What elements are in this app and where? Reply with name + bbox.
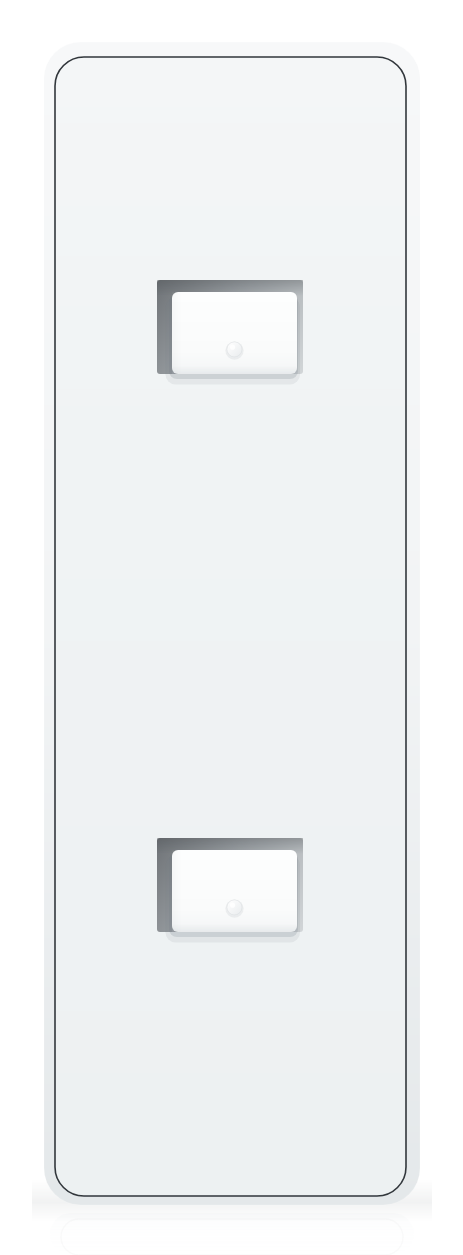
button[interactable]: Switch one	[172, 292, 297, 374]
button[interactable]: Switch two	[172, 850, 297, 932]
button[interactable]: Two-gang wall switch panel	[0, 0, 463, 1255]
